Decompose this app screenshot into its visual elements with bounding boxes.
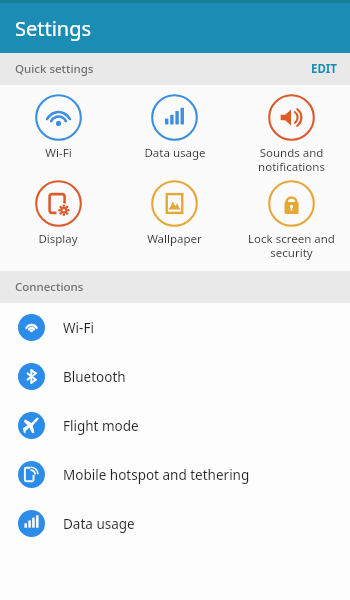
staticText: Wi-Fi (63, 319, 94, 337)
button[interactable]: Data usage (0, 499, 350, 548)
button[interactable]: Mobile hotspot and tethering (0, 450, 350, 499)
button[interactable]: Lock screen and security (233, 180, 350, 260)
staticText: Quick settings (15, 61, 94, 77)
button[interactable]: Flight mode (0, 401, 350, 450)
staticText: Mobile hotspot and tethering (63, 466, 250, 484)
button[interactable]: Sounds and notifications (233, 94, 350, 174)
staticText: Wallpaper (147, 231, 202, 247)
button[interactable]: Display (0, 180, 116, 247)
staticText: Lock screen and security (248, 231, 335, 260)
staticText: Display (38, 231, 78, 247)
button[interactable]: Wi-Fi (0, 94, 116, 161)
button[interactable]: Wi-Fi (0, 303, 350, 352)
staticText: Sounds and notifications (258, 145, 325, 174)
staticText: Settings (15, 15, 92, 42)
staticText: EDIT (311, 61, 337, 77)
button[interactable]: Wallpaper (116, 180, 233, 247)
staticText: Flight mode (63, 417, 139, 435)
staticText: Connections (15, 279, 84, 295)
button[interactable]: Data usage (116, 94, 233, 161)
staticText: Bluetooth (63, 368, 126, 386)
button[interactable]: EDIT (298, 54, 350, 84)
staticText: Data usage (144, 145, 206, 161)
staticText: Wi-Fi (45, 145, 72, 161)
staticText: Data usage (63, 515, 135, 533)
button[interactable]: Bluetooth (0, 352, 350, 401)
